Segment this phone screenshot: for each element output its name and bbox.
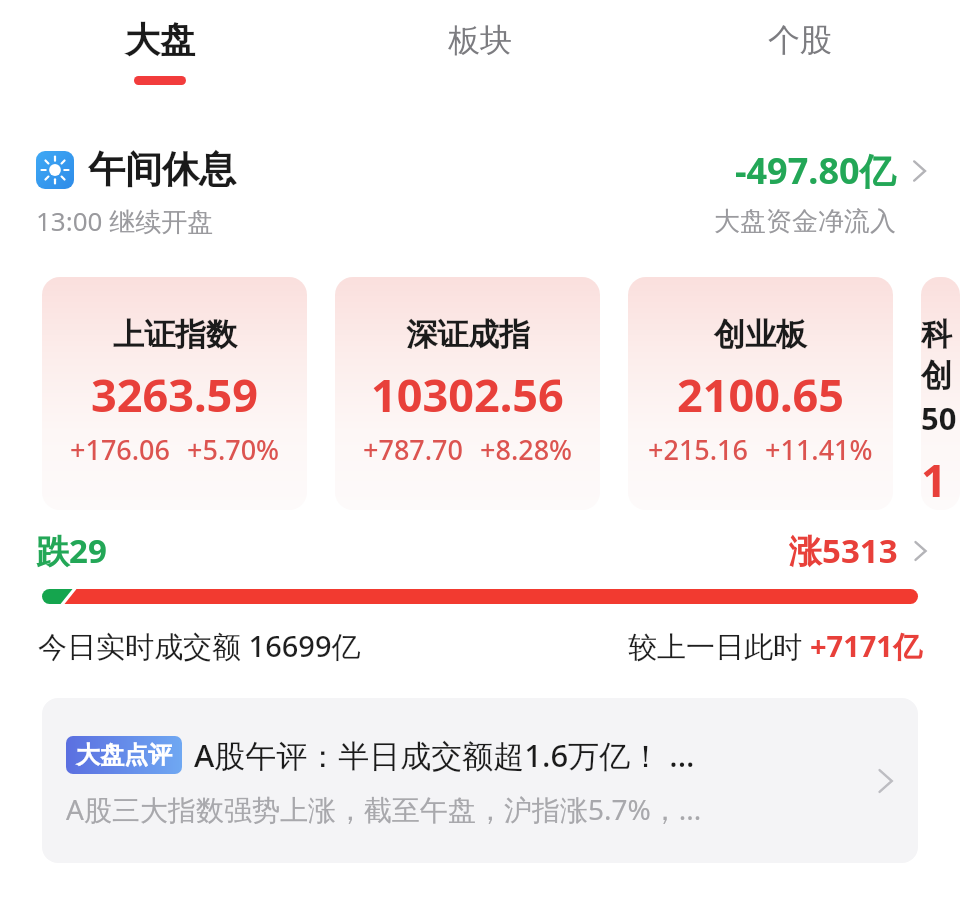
staticText: +11.41% <box>765 431 873 468</box>
staticText: +5.70% <box>187 431 280 468</box>
button[interactable]: 深证成指 <box>335 277 600 510</box>
staticText: 3263.59 <box>91 364 259 425</box>
button[interactable]: 板块 <box>320 0 640 100</box>
button[interactable]: 科创50 <box>921 277 960 510</box>
staticText: A股三大指数强势上涨，截至午盘，沪指涨5.7%，... <box>66 790 702 828</box>
staticText: 板块 <box>448 20 512 60</box>
button[interactable]: 个股 <box>640 0 960 100</box>
button[interactable]: 午间休息 <box>36 146 934 239</box>
staticText: -497.80亿 <box>735 146 896 195</box>
button[interactable]: 创业板 <box>628 277 893 510</box>
button[interactable]: 大盘 <box>0 0 320 100</box>
staticText: 较上一日此时 <box>628 626 810 666</box>
button[interactable]: 上证指数 <box>42 277 307 510</box>
button[interactable]: 跌29 <box>36 528 934 573</box>
staticText: 2100.65 <box>677 364 845 425</box>
staticText: 深证成指 <box>406 315 530 354</box>
staticText: +787.70 <box>363 431 464 468</box>
staticText: 大盘资金净流入 <box>714 205 896 238</box>
staticText: 13:00 继续开盘 <box>36 203 214 239</box>
staticText: +176.06 <box>70 431 171 468</box>
staticText: A股午评：半日成交额超1.6万亿！ ... <box>194 734 695 776</box>
staticText: 大盘点评 <box>76 740 172 770</box>
other: 查看大盘资金净流入 <box>904 156 934 186</box>
staticText: 1200.00 <box>921 449 960 510</box>
staticText: +7171亿 <box>810 626 922 666</box>
staticText: 午间休息 <box>88 146 236 193</box>
staticText: 上证指数 <box>113 315 237 354</box>
staticText: 创业板 <box>714 315 807 354</box>
staticText: 科创50 <box>921 315 960 439</box>
staticText: 涨5313 <box>789 528 898 573</box>
button[interactable]: 大盘点评 <box>42 698 918 863</box>
staticText: 今日实时成交额 16699亿 <box>38 626 361 666</box>
staticText: 大盘 <box>125 18 195 62</box>
staticText: 个股 <box>768 20 832 60</box>
staticText: 10302.56 <box>371 364 564 425</box>
staticText: +215.16 <box>648 431 749 468</box>
staticText: +8.28% <box>480 431 573 468</box>
staticText: 跌29 <box>36 528 107 573</box>
